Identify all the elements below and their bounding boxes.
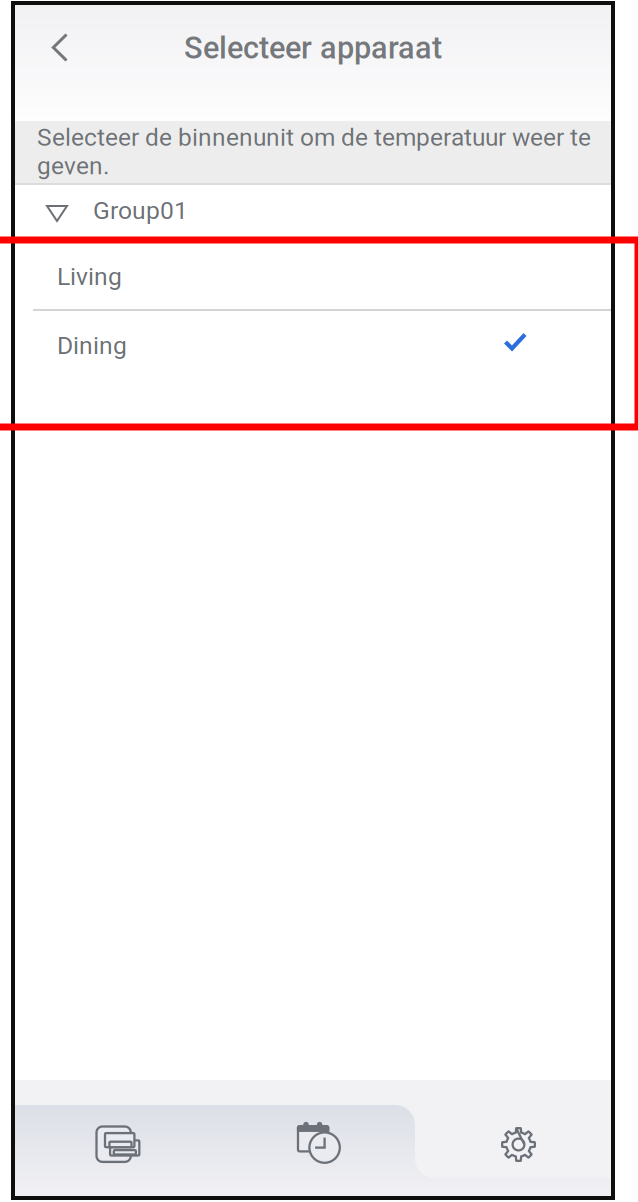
- button[interactable]: Devices: [15, 1080, 213, 1196]
- staticText: Dining: [57, 331, 127, 360]
- button[interactable]: Settings: [413, 1080, 611, 1196]
- button[interactable]: Living: [15, 240, 611, 309]
- staticText: Living: [57, 262, 122, 291]
- staticText: Group01: [93, 196, 188, 225]
- button[interactable]: Schedule: [214, 1080, 412, 1196]
- staticText: Selecteer apparaat: [184, 30, 442, 66]
- staticText: Selecteer de binnenunit om de temperatuu…: [37, 123, 591, 180]
- button[interactable]: Back: [24, 5, 96, 91]
- button[interactable]: Group01: [15, 185, 611, 240]
- button[interactable]: Dining: [15, 309, 611, 378]
